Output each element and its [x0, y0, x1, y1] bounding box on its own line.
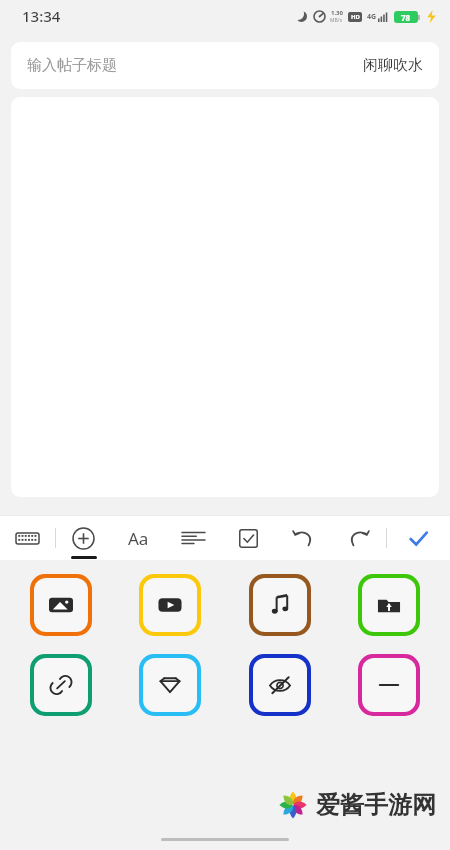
- staticText: MB/s: [330, 17, 343, 24]
- button[interactable]: Checklist: [221, 516, 276, 560]
- button[interactable]: Insert: [56, 516, 111, 560]
- button[interactable]: Confirm: [387, 516, 450, 560]
- button[interactable]: Align: [166, 516, 221, 560]
- button[interactable]: Insert image: [34, 578, 88, 632]
- button[interactable]: Redo: [331, 516, 386, 560]
- button[interactable]: Insert link: [34, 658, 88, 712]
- staticText: 78: [401, 12, 411, 23]
- staticText: Aa: [128, 527, 149, 550]
- button[interactable]: Text style: [111, 516, 166, 560]
- button[interactable]: Undo: [276, 516, 331, 560]
- button[interactable]: Hide content: [253, 658, 307, 712]
- staticText: 4G: [367, 12, 377, 22]
- button[interactable]: Insert music: [253, 578, 307, 632]
- button[interactable]: Diamond: [143, 658, 197, 712]
- button[interactable]: Divider: [362, 658, 416, 712]
- button[interactable]: Keyboard: [0, 516, 55, 560]
- button[interactable]: 输入帖子标题: [11, 42, 439, 89]
- staticText: 爱酱手游网: [316, 790, 436, 820]
- button[interactable]: Insert video: [143, 578, 197, 632]
- staticText: 1.30: [331, 9, 343, 17]
- staticText: 闲聊吹水: [363, 56, 423, 75]
- staticText: 13:34: [22, 6, 61, 26]
- button[interactable]: Upload file: [362, 578, 416, 632]
- staticText: 输入帖子标题: [27, 56, 117, 75]
- staticText: HD: [351, 13, 360, 21]
